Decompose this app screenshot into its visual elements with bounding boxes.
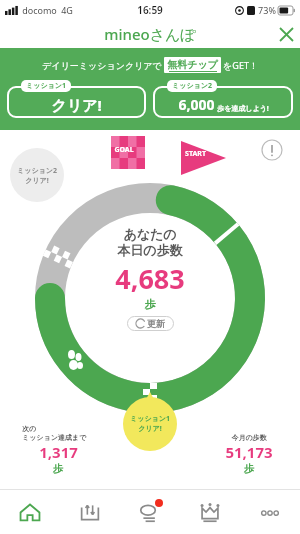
staticText: 4,683 bbox=[115, 260, 185, 297]
staticText: デイリーミッションクリアで bbox=[42, 60, 162, 71]
staticText: mineoさんぽ bbox=[104, 24, 196, 44]
staticText: 4G bbox=[61, 4, 73, 16]
staticText: ミッション1 bbox=[130, 414, 170, 424]
button[interactable]: Data bbox=[60, 489, 120, 534]
button[interactable]: Chat bbox=[120, 489, 180, 534]
staticText: 今月の歩数 bbox=[231, 433, 267, 442]
button[interactable]: クリア! bbox=[7, 80, 146, 118]
staticText: 歩 bbox=[145, 297, 156, 311]
staticText: 無料チップ bbox=[167, 58, 218, 71]
staticText: 1,317 bbox=[39, 442, 78, 462]
staticText: 本日の歩数 bbox=[117, 242, 183, 258]
staticText: ミッション2 bbox=[172, 81, 212, 91]
staticText: 更新 bbox=[147, 318, 165, 329]
staticText: ミッション2 クリア! bbox=[17, 166, 57, 185]
staticText: 歩 bbox=[244, 462, 254, 475]
staticText: 歩を達成しよう! bbox=[217, 104, 269, 114]
button[interactable]: 更新 bbox=[127, 316, 174, 331]
button[interactable]: 6,000 bbox=[153, 80, 293, 118]
staticText: GOAL bbox=[114, 145, 134, 155]
button[interactable]: Home bbox=[0, 489, 60, 534]
staticText: START bbox=[185, 149, 206, 159]
staticText: docomo bbox=[22, 4, 57, 16]
staticText: 6,000 bbox=[178, 95, 215, 114]
staticText: をGET！ bbox=[223, 59, 258, 71]
staticText: 歩 bbox=[53, 462, 63, 475]
staticText: 次の bbox=[22, 424, 37, 433]
staticText: 51,173 bbox=[225, 442, 273, 462]
staticText: 16:59 bbox=[137, 3, 163, 17]
staticText: あなたの bbox=[123, 226, 177, 242]
button[interactable]: Close bbox=[272, 20, 300, 48]
button[interactable]: Info bbox=[258, 136, 286, 164]
staticText: ミッション達成まで bbox=[22, 433, 87, 442]
staticText: ミッション1 bbox=[26, 81, 66, 91]
staticText: クリア! bbox=[51, 95, 102, 115]
staticText: クリア! bbox=[138, 424, 162, 434]
button[interactable]: Rank bbox=[180, 489, 240, 534]
staticText: 73% bbox=[258, 4, 276, 16]
button[interactable]: More bbox=[240, 489, 300, 534]
